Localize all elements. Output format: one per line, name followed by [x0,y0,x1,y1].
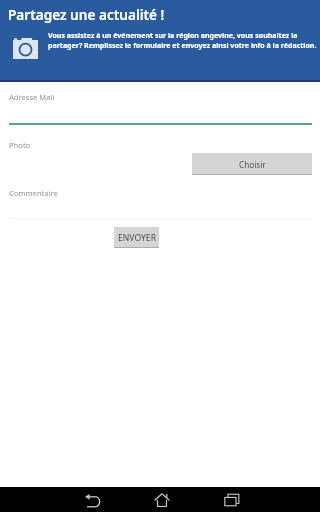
button[interactable]: ENVOYER [114,227,159,248]
staticText: Photo [9,140,31,150]
button[interactable]: Commentaire [9,184,312,219]
staticText: Adresse Mail [9,92,55,102]
button[interactable]: Choisir [192,153,312,175]
staticText: ENVOYER [118,232,156,244]
staticText: Vous assistez à un événement sur la régi… [48,30,320,50]
staticText: Choisir [239,159,266,170]
button[interactable]: Back [69,487,115,512]
staticText: Commentaire [9,188,58,198]
button[interactable]: Adresse Mail [9,88,312,125]
button[interactable]: Recents [209,487,255,512]
staticText: Partagez une actualité ! [8,5,165,24]
button[interactable]: Home [139,487,185,512]
